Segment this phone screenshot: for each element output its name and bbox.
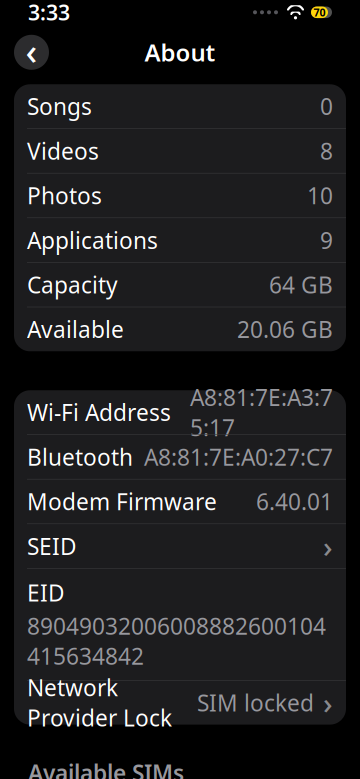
- button[interactable]: Wi-Fi Address: [14, 390, 346, 434]
- button[interactable]: Network Provider Lock: [14, 681, 346, 725]
- staticText: A8:81:7E:A3:75:17: [190, 382, 333, 442]
- staticText: Available: [27, 314, 124, 344]
- staticText: ›: [323, 683, 333, 722]
- staticText: 64 GB: [269, 270, 333, 300]
- staticText: Capacity: [27, 270, 118, 300]
- staticText: 6.40.01: [256, 486, 333, 516]
- button[interactable]: Photos: [14, 173, 346, 217]
- staticText: Available SIMs: [28, 758, 184, 779]
- staticText: ›: [323, 527, 333, 566]
- button[interactable]: Applications: [14, 218, 346, 262]
- staticText: 89049032006008882600104415634842: [27, 611, 326, 671]
- staticText: 8: [320, 136, 333, 166]
- staticText: About: [144, 36, 215, 68]
- staticText: Network Provider Lock: [27, 672, 172, 733]
- button[interactable]: EID: [14, 569, 346, 680]
- staticText: Photos: [27, 180, 102, 210]
- button[interactable]: Videos: [14, 129, 346, 173]
- staticText: 0: [320, 91, 333, 121]
- staticText: 3:33: [28, 0, 70, 26]
- staticText: ‹: [25, 27, 37, 75]
- button[interactable]: Back: [14, 35, 49, 70]
- staticText: SIM locked: [197, 688, 314, 718]
- button[interactable]: SEID: [14, 524, 346, 568]
- staticText: Modem Firmware: [27, 486, 217, 516]
- staticText: Applications: [27, 225, 158, 255]
- staticText: SEID: [27, 531, 77, 561]
- staticText: Videos: [27, 136, 99, 166]
- staticText: Bluetooth: [27, 442, 133, 472]
- button[interactable]: Songs: [14, 84, 346, 128]
- button[interactable]: Capacity: [14, 263, 346, 307]
- staticText: 9: [320, 225, 333, 255]
- button[interactable]: Modem Firmware: [14, 479, 346, 523]
- staticText: 70: [313, 5, 325, 19]
- button[interactable]: Bluetooth: [14, 435, 346, 479]
- button[interactable]: Available: [14, 307, 346, 351]
- staticText: 10: [307, 180, 333, 210]
- staticText: Songs: [27, 91, 92, 121]
- staticText: 20.06 GB: [237, 314, 333, 344]
- staticText: Wi-Fi Address: [27, 397, 171, 427]
- staticText: A8:81:7E:A0:27:C7: [144, 442, 333, 472]
- staticText: EID: [27, 578, 65, 608]
